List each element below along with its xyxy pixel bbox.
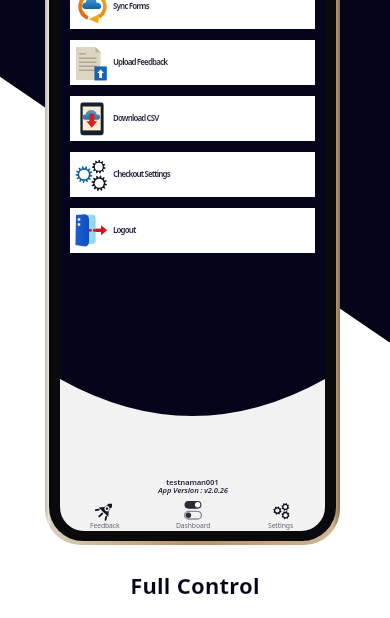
button[interactable]: Logout: [70, 208, 315, 253]
staticText: Logout: [113, 225, 136, 236]
staticText: App Version : v2.0.26: [158, 485, 228, 495]
staticText: Upload Feedback: [113, 57, 168, 68]
staticText: Settings: [268, 521, 294, 530]
staticText: Sync Forms: [113, 1, 149, 12]
button[interactable]: Dashboard: [149, 501, 237, 530]
staticText: Feedback: [90, 521, 120, 530]
staticText: testnaman001: [166, 477, 219, 487]
button[interactable]: Sync Forms: [70, 0, 315, 29]
staticText: Download CSV: [113, 113, 159, 124]
staticText: Full Control: [130, 570, 260, 600]
staticText: Dashboard: [176, 521, 211, 530]
button[interactable]: Download CSV: [70, 96, 315, 141]
button[interactable]: Upload Feedback: [70, 40, 315, 85]
button[interactable]: Feedback: [60, 501, 149, 530]
button[interactable]: Checkout Settings: [70, 152, 315, 197]
button[interactable]: Settings: [237, 501, 325, 530]
staticText: Checkout Settings: [113, 169, 170, 180]
